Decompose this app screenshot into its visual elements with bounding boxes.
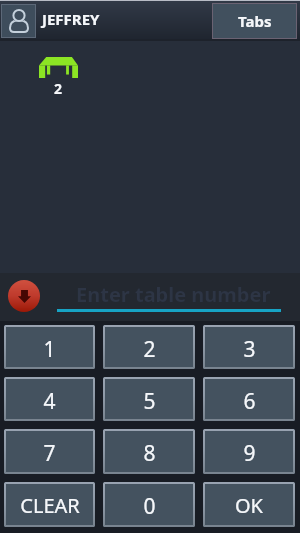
staticText: Tabs — [238, 11, 272, 31]
staticText: 9 — [243, 439, 256, 468]
staticText: 2 — [143, 335, 156, 364]
staticText: 7 — [43, 439, 56, 468]
button[interactable]: Collapse — [8, 280, 40, 312]
button[interactable]: Tabs — [212, 3, 297, 39]
button[interactable]: 5 — [103, 377, 195, 421]
staticText: 5 — [143, 387, 156, 416]
staticText: OK — [235, 492, 263, 519]
button[interactable]: 9 — [203, 429, 295, 474]
staticText: CLEAR — [20, 492, 80, 519]
button[interactable]: 4 — [4, 377, 95, 421]
staticText: JEFFREY — [42, 9, 100, 29]
staticText: 1 — [43, 335, 56, 364]
staticText: 2 — [54, 79, 63, 98]
button[interactable]: 8 — [103, 429, 195, 474]
staticText: 4 — [43, 387, 56, 416]
staticText: Enter table number — [76, 281, 271, 308]
staticText: 3 — [243, 335, 256, 364]
button[interactable]: 1 — [4, 325, 95, 369]
button[interactable]: 6 — [203, 377, 295, 421]
button[interactable]: 3 — [203, 325, 295, 369]
button[interactable]: 2 — [103, 325, 195, 369]
button[interactable]: OK — [203, 482, 295, 527]
button[interactable]: Account — [1, 4, 36, 38]
staticText: 0 — [143, 492, 156, 521]
button[interactable]: CLEAR — [4, 482, 95, 527]
button[interactable]: 0 — [103, 482, 195, 527]
staticText: 8 — [143, 439, 156, 468]
staticText: 6 — [243, 387, 256, 416]
button[interactable]: 7 — [4, 429, 95, 474]
